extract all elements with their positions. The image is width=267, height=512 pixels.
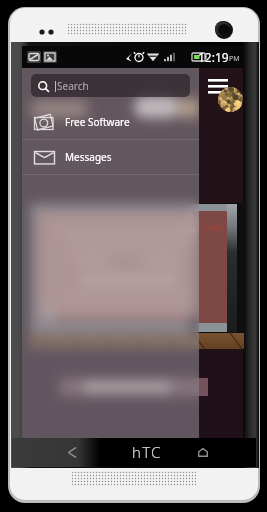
button[interactable]: Profile [218, 87, 243, 112]
staticText: Messages [65, 150, 112, 164]
button[interactable]: Back [12, 438, 100, 467]
button[interactable]: Search [31, 74, 190, 97]
staticText: hTC [132, 442, 162, 462]
button[interactable]: Home [184, 438, 224, 467]
staticText: Free Software [65, 115, 130, 129]
staticText: 12:19 [198, 49, 229, 65]
button[interactable]: Messages [22, 140, 199, 174]
staticText: Search [57, 79, 89, 93]
button[interactable]: Open navigation menu [208, 79, 228, 95]
staticText: hello [206, 223, 223, 233]
button[interactable]: Free Software [22, 105, 199, 139]
staticText: PM [229, 54, 240, 64]
